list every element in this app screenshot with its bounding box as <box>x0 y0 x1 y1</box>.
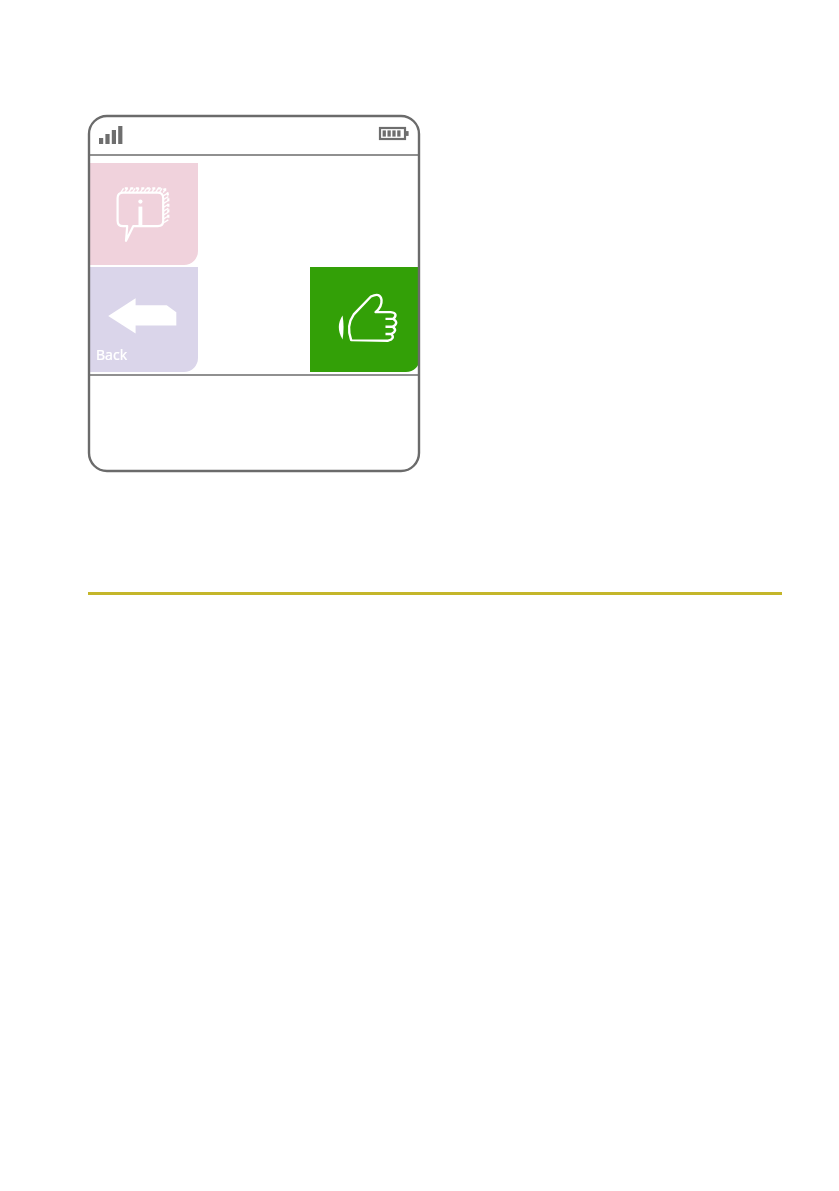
button[interactable]: Battery <box>380 126 410 144</box>
button[interactable]: Information <box>88 163 198 265</box>
staticText: Back <box>96 345 128 364</box>
button[interactable]: Back <box>88 267 198 372</box>
button[interactable]: Signal strength <box>98 124 128 148</box>
button[interactable]: Like <box>310 267 420 372</box>
